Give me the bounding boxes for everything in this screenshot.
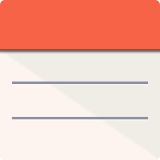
button[interactable]: Note line [0, 85, 160, 120]
button[interactable]: Note line [0, 50, 160, 85]
button[interactable]: Notes [0, 0, 160, 50]
